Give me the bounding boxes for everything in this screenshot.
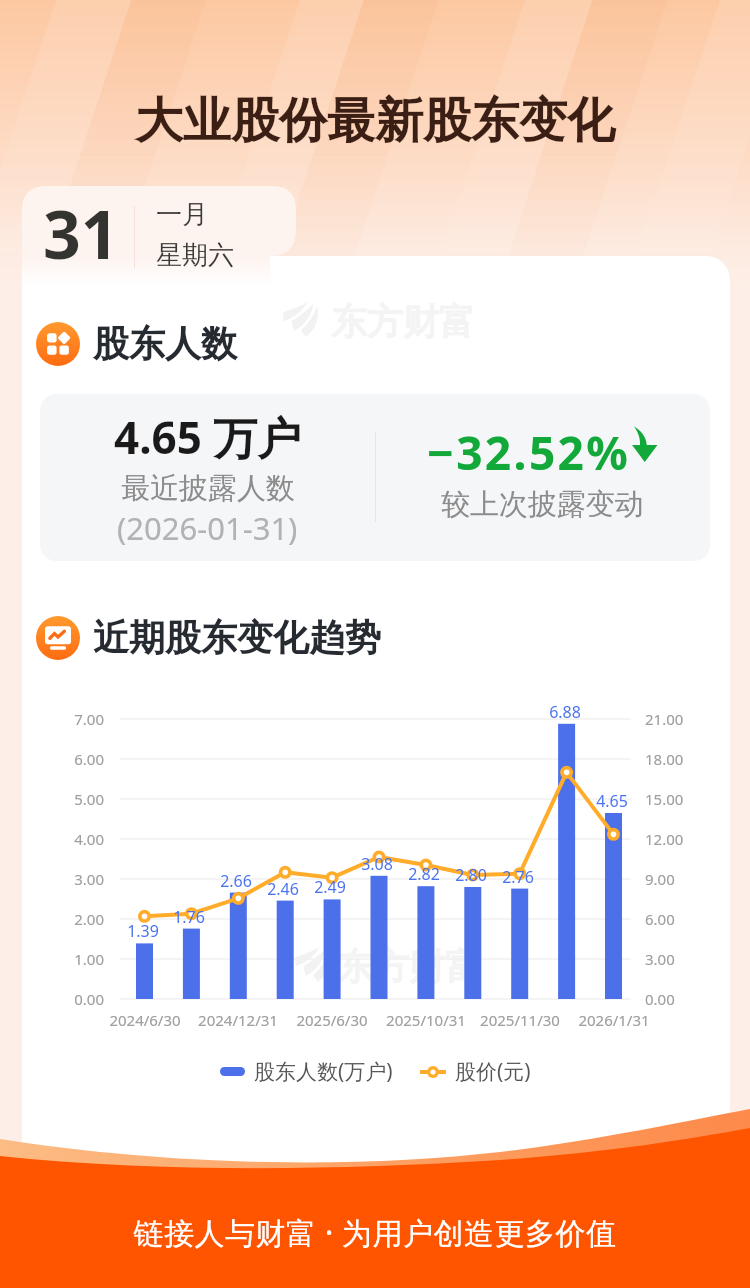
staticText: 6.00 (645, 909, 750, 929)
staticText: 一月 (156, 198, 208, 231)
staticText: 1.00 (0, 949, 104, 969)
staticText: 4.65 (562, 790, 662, 812)
staticText: 较上次披露变动 (441, 486, 644, 523)
other: 近期股东变化趋势 (36, 616, 80, 660)
staticText: 31 (43, 188, 119, 278)
staticText: 3.00 (645, 949, 750, 969)
staticText: 2.82 (374, 863, 474, 885)
staticText: 2025/10/31 (346, 1010, 506, 1030)
staticText: 3.00 (0, 869, 104, 889)
staticText: 2.76 (468, 866, 568, 888)
staticText: 6.88 (515, 701, 615, 723)
staticText: 1.76 (139, 906, 239, 928)
staticText: (2026-01-31) (117, 507, 298, 549)
staticText: 2.49 (280, 876, 380, 898)
staticText: 2024/6/30 (65, 1010, 225, 1030)
staticText: 5.00 (0, 789, 104, 809)
staticText: 2026/1/31 (534, 1010, 694, 1030)
staticText: 0.00 (645, 989, 750, 1009)
staticText: 2.80 (421, 864, 521, 886)
staticText: 股东人数(万户) (254, 1057, 393, 1086)
staticText: 15.00 (645, 789, 750, 809)
staticText: 2025/6/30 (252, 1010, 412, 1030)
staticText: 星期六 (156, 239, 234, 272)
other: 股东人数 (36, 322, 80, 366)
staticText: 6.00 (0, 749, 104, 769)
button[interactable]: 近期股东变化趋势 (36, 615, 381, 660)
staticText: 股东人数 (93, 321, 237, 366)
staticText: 大业股份最新股东变化 (0, 91, 750, 151)
staticText: 0.00 (0, 989, 104, 1009)
staticText: 近期股东变化趋势 (93, 615, 381, 660)
staticText: 9.00 (645, 869, 750, 889)
staticText: 21.00 (645, 709, 750, 729)
staticText: 链接人与财富 · 为用户创造更多价值 (0, 1212, 750, 1253)
staticText: 2.00 (0, 909, 104, 929)
staticText: 东方财富 (331, 299, 475, 344)
staticText: 股价(元) (455, 1057, 531, 1086)
staticText: 3.08 (327, 853, 427, 875)
button[interactable]: 股东人数 (36, 321, 237, 366)
staticText: 4.00 (0, 829, 104, 849)
staticText: −32.52% (427, 421, 631, 484)
staticText: 2025/11/30 (440, 1010, 600, 1030)
staticText: 18.00 (645, 749, 750, 769)
staticText: 2.66 (186, 870, 286, 892)
staticText: 12.00 (645, 829, 750, 849)
staticText: 2.46 (233, 878, 333, 900)
staticText: 2024/12/31 (158, 1010, 318, 1030)
staticText: 最近披露人数 (121, 470, 295, 507)
staticText: 7.00 (0, 709, 104, 729)
staticText: 1.39 (93, 920, 193, 942)
staticText: 东方财富 (337, 944, 481, 989)
staticText: 4.65 万户 (114, 407, 302, 467)
